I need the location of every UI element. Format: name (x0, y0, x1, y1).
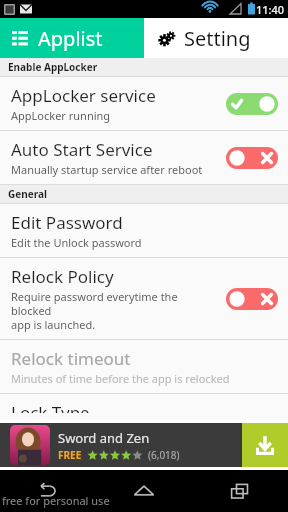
staticText: Setting (184, 25, 251, 52)
staticText: Auto Start Service (11, 138, 153, 161)
staticText: Edit Password (11, 211, 123, 234)
staticText: Applist (38, 25, 103, 52)
staticText: free for personal use (2, 493, 110, 508)
button[interactable]: Recent apps (192, 470, 288, 512)
button[interactable]: Relock timeout (0, 340, 288, 393)
button[interactable]: Relock Policy (0, 258, 288, 339)
button[interactable]: Disabled toggle (226, 288, 278, 310)
staticText: Relock Policy (11, 265, 114, 288)
staticText: Require password everytime the blocked a… (11, 289, 218, 332)
other: App list (12, 30, 28, 46)
button[interactable]: Edit Password (0, 204, 288, 257)
staticText: (6,018) (148, 448, 180, 462)
button[interactable]: Settings (144, 18, 288, 58)
other: Settings (158, 30, 175, 47)
staticText: AppLocker running (11, 108, 111, 123)
button[interactable]: Back (0, 470, 96, 512)
staticText: Relock timeout (11, 347, 131, 370)
button[interactable]: AppLocker service (0, 77, 288, 130)
button[interactable]: Auto Start Service (0, 131, 288, 184)
button[interactable]: App list (0, 18, 144, 58)
staticText: Lock Type (11, 401, 90, 413)
button[interactable]: Lock Type (0, 394, 288, 420)
staticText: General (8, 187, 47, 201)
button[interactable]: Home (96, 470, 192, 512)
button[interactable]: Install (242, 423, 288, 467)
staticText: AppLocker service (11, 84, 156, 107)
staticText: Sword and Zen (58, 429, 150, 447)
staticText: FREE (58, 448, 82, 462)
staticText: Edit the Unlock password (11, 235, 142, 250)
button[interactable]: Sword and Zen (0, 423, 288, 467)
button[interactable]: Disabled toggle (226, 147, 278, 169)
button[interactable]: Enabled toggle (226, 93, 278, 115)
staticText: Manually startup service after reboot (11, 162, 203, 177)
staticText: Enable AppLocker (8, 60, 98, 74)
staticText: Minutes of time before the app is relock… (11, 371, 230, 386)
staticText: 11:40 (256, 2, 285, 17)
